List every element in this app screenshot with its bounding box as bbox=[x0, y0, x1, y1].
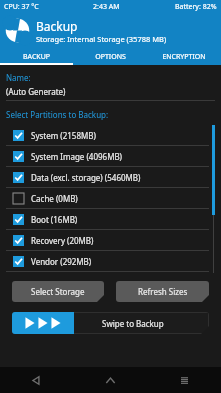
button[interactable]: Swipe to Backup bbox=[12, 312, 209, 334]
staticText: Name: bbox=[6, 72, 31, 83]
button[interactable]: OPTIONS bbox=[73, 48, 147, 65]
button[interactable]: BACKUP bbox=[0, 48, 73, 65]
button[interactable]: Refresh Sizes bbox=[116, 281, 209, 302]
staticText: Storage: Internal Storage (35788 MB) bbox=[36, 34, 167, 44]
staticText: System Image (4096MB) bbox=[31, 151, 123, 162]
button[interactable]: Home bbox=[73, 367, 147, 393]
button[interactable]: Recovery (20MB) bbox=[6, 230, 209, 251]
staticText: Swipe to Backup bbox=[102, 318, 164, 329]
button[interactable]: (Auto Generate) bbox=[6, 86, 215, 101]
staticText: (Auto Generate) bbox=[6, 86, 66, 97]
staticText: BACKUP bbox=[23, 52, 50, 62]
button[interactable]: System Image (4096MB) bbox=[6, 146, 209, 167]
button[interactable]: Back bbox=[0, 367, 73, 393]
staticText: ENCRYPTION bbox=[162, 52, 206, 62]
staticText: Vendor (292MB) bbox=[31, 256, 92, 267]
button[interactable]: Vendor (292MB) bbox=[6, 251, 209, 272]
staticText: Select Partitions to Backup: bbox=[6, 109, 109, 120]
button[interactable]: Cache (0MB) bbox=[6, 188, 209, 209]
button[interactable]: System (2158MB) bbox=[6, 125, 209, 146]
staticText: Boot (16MB) bbox=[31, 214, 78, 225]
staticText: Cache (0MB) bbox=[31, 193, 78, 204]
staticText: CPU: 37 °C bbox=[4, 2, 39, 12]
button[interactable]: ENCRYPTION bbox=[147, 48, 221, 65]
staticText: Data (excl. storage) (5460MB) bbox=[31, 172, 141, 183]
button[interactable]: Select Storage bbox=[12, 281, 104, 302]
staticText: Backup bbox=[36, 18, 78, 34]
button[interactable]: Boot (16MB) bbox=[6, 209, 209, 230]
staticText: System (2158MB) bbox=[31, 130, 96, 141]
button[interactable]: Data (excl. storage) (5460MB) bbox=[6, 167, 209, 188]
button[interactable]: Recent apps bbox=[147, 367, 221, 393]
staticText: 2:43 AM bbox=[93, 2, 120, 12]
staticText: Select Storage bbox=[31, 286, 85, 297]
staticText: OPTIONS bbox=[95, 52, 126, 62]
staticText: Refresh Sizes bbox=[138, 286, 188, 297]
staticText: Recovery (20MB) bbox=[31, 235, 94, 246]
staticText: Battery: 82% bbox=[175, 2, 217, 12]
